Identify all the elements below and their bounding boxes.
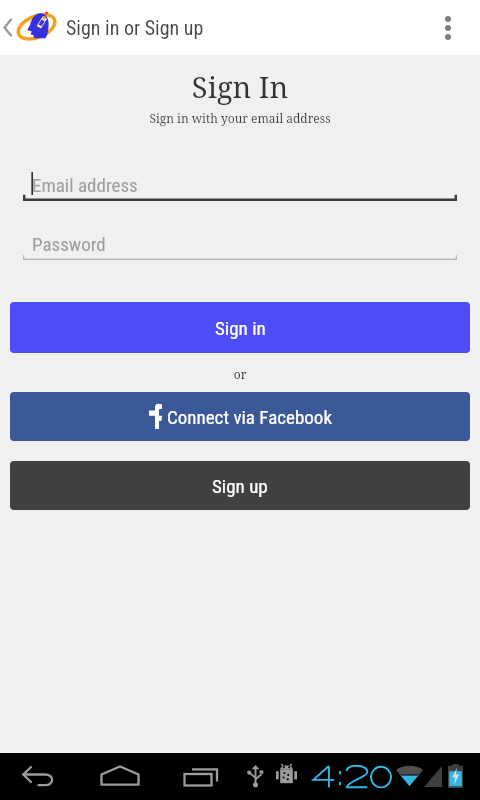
staticText: Sign in with your email address	[0, 110, 480, 126]
button[interactable]: Recent apps	[180, 753, 224, 800]
staticText: Sign in or Sign up	[66, 16, 204, 39]
staticText: Sign In	[0, 67, 480, 106]
button[interactable]: Email address	[23, 171, 457, 201]
staticText: Sign up	[212, 475, 268, 497]
button[interactable]: Sign up	[10, 461, 470, 510]
staticText: Email address	[32, 174, 138, 196]
button[interactable]: Password	[23, 230, 457, 260]
button[interactable]: Navigate up	[0, 0, 58, 55]
staticText: Connect via Facebook	[167, 406, 332, 428]
staticText: Sign in	[215, 317, 266, 339]
button[interactable]: Back	[16, 753, 64, 800]
button[interactable]: Connect via Facebook	[10, 392, 470, 441]
button[interactable]: Sign in	[10, 302, 470, 353]
staticText: Password	[32, 233, 106, 255]
button[interactable]: More options	[424, 0, 480, 55]
button[interactable]: Home	[96, 753, 144, 800]
staticText: or	[0, 366, 480, 382]
